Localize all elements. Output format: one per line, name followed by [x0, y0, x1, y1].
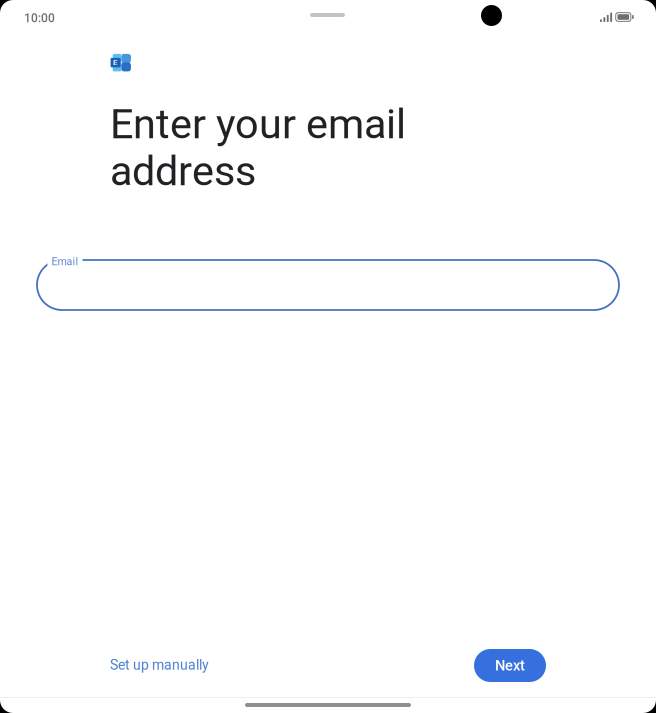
button[interactable]: Email — [37, 260, 619, 310]
staticText: Next — [495, 657, 525, 674]
button[interactable]: Set up manually — [110, 647, 240, 683]
staticText: address — [110, 147, 256, 195]
staticText: 10:00 — [24, 11, 55, 25]
button[interactable]: Next — [474, 649, 546, 682]
staticText: E — [113, 58, 118, 67]
staticText: Set up manually — [110, 657, 209, 673]
staticText: Email — [51, 255, 78, 268]
staticText: Enter your email — [110, 100, 406, 148]
